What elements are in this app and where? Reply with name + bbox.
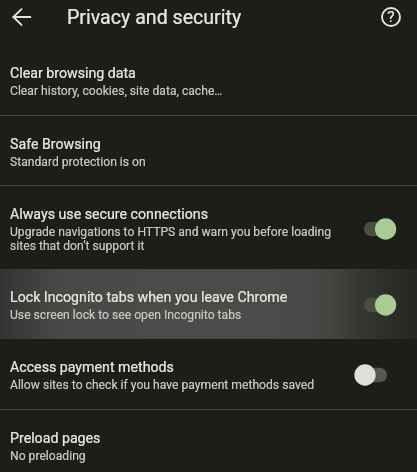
staticText: Safe Browsing [10, 136, 101, 153]
button[interactable]: On [352, 283, 398, 327]
button[interactable]: Preload pages [0, 410, 417, 472]
staticText: No preloading [10, 449, 86, 463]
staticText: ? [387, 8, 395, 26]
button[interactable]: Safe Browsing [0, 116, 417, 185]
staticText: Preload pages [10, 430, 101, 447]
staticText: Access payment methods [10, 359, 174, 376]
staticText: Clear history, cookies, site data, cache… [10, 84, 223, 98]
staticText: Lock Incognito tabs when you leave Chrom… [10, 289, 288, 306]
staticText: Allow sites to check if you have payment… [10, 378, 315, 392]
staticText: Clear browsing data [10, 65, 136, 82]
staticText: Use screen lock to see open Incognito ta… [10, 308, 242, 322]
button[interactable]: Lock Incognito tabs when you leave Chrom… [0, 269, 417, 339]
staticText: Standard protection is on [10, 155, 146, 169]
button[interactable]: On [352, 207, 398, 251]
staticText: Privacy and security [67, 6, 242, 29]
button[interactable]: Always use secure connections [0, 186, 417, 269]
button[interactable]: Clear browsing data [0, 45, 417, 115]
button[interactable]: Navigate up [4, 0, 38, 34]
staticText: Always use secure connections [10, 206, 209, 223]
button[interactable]: Access payment methods [0, 339, 417, 409]
button[interactable]: Help & feedback [374, 0, 408, 34]
staticText: Upgrade navigations to HTTPS and warn yo… [10, 225, 337, 253]
button[interactable]: Off [352, 353, 398, 397]
